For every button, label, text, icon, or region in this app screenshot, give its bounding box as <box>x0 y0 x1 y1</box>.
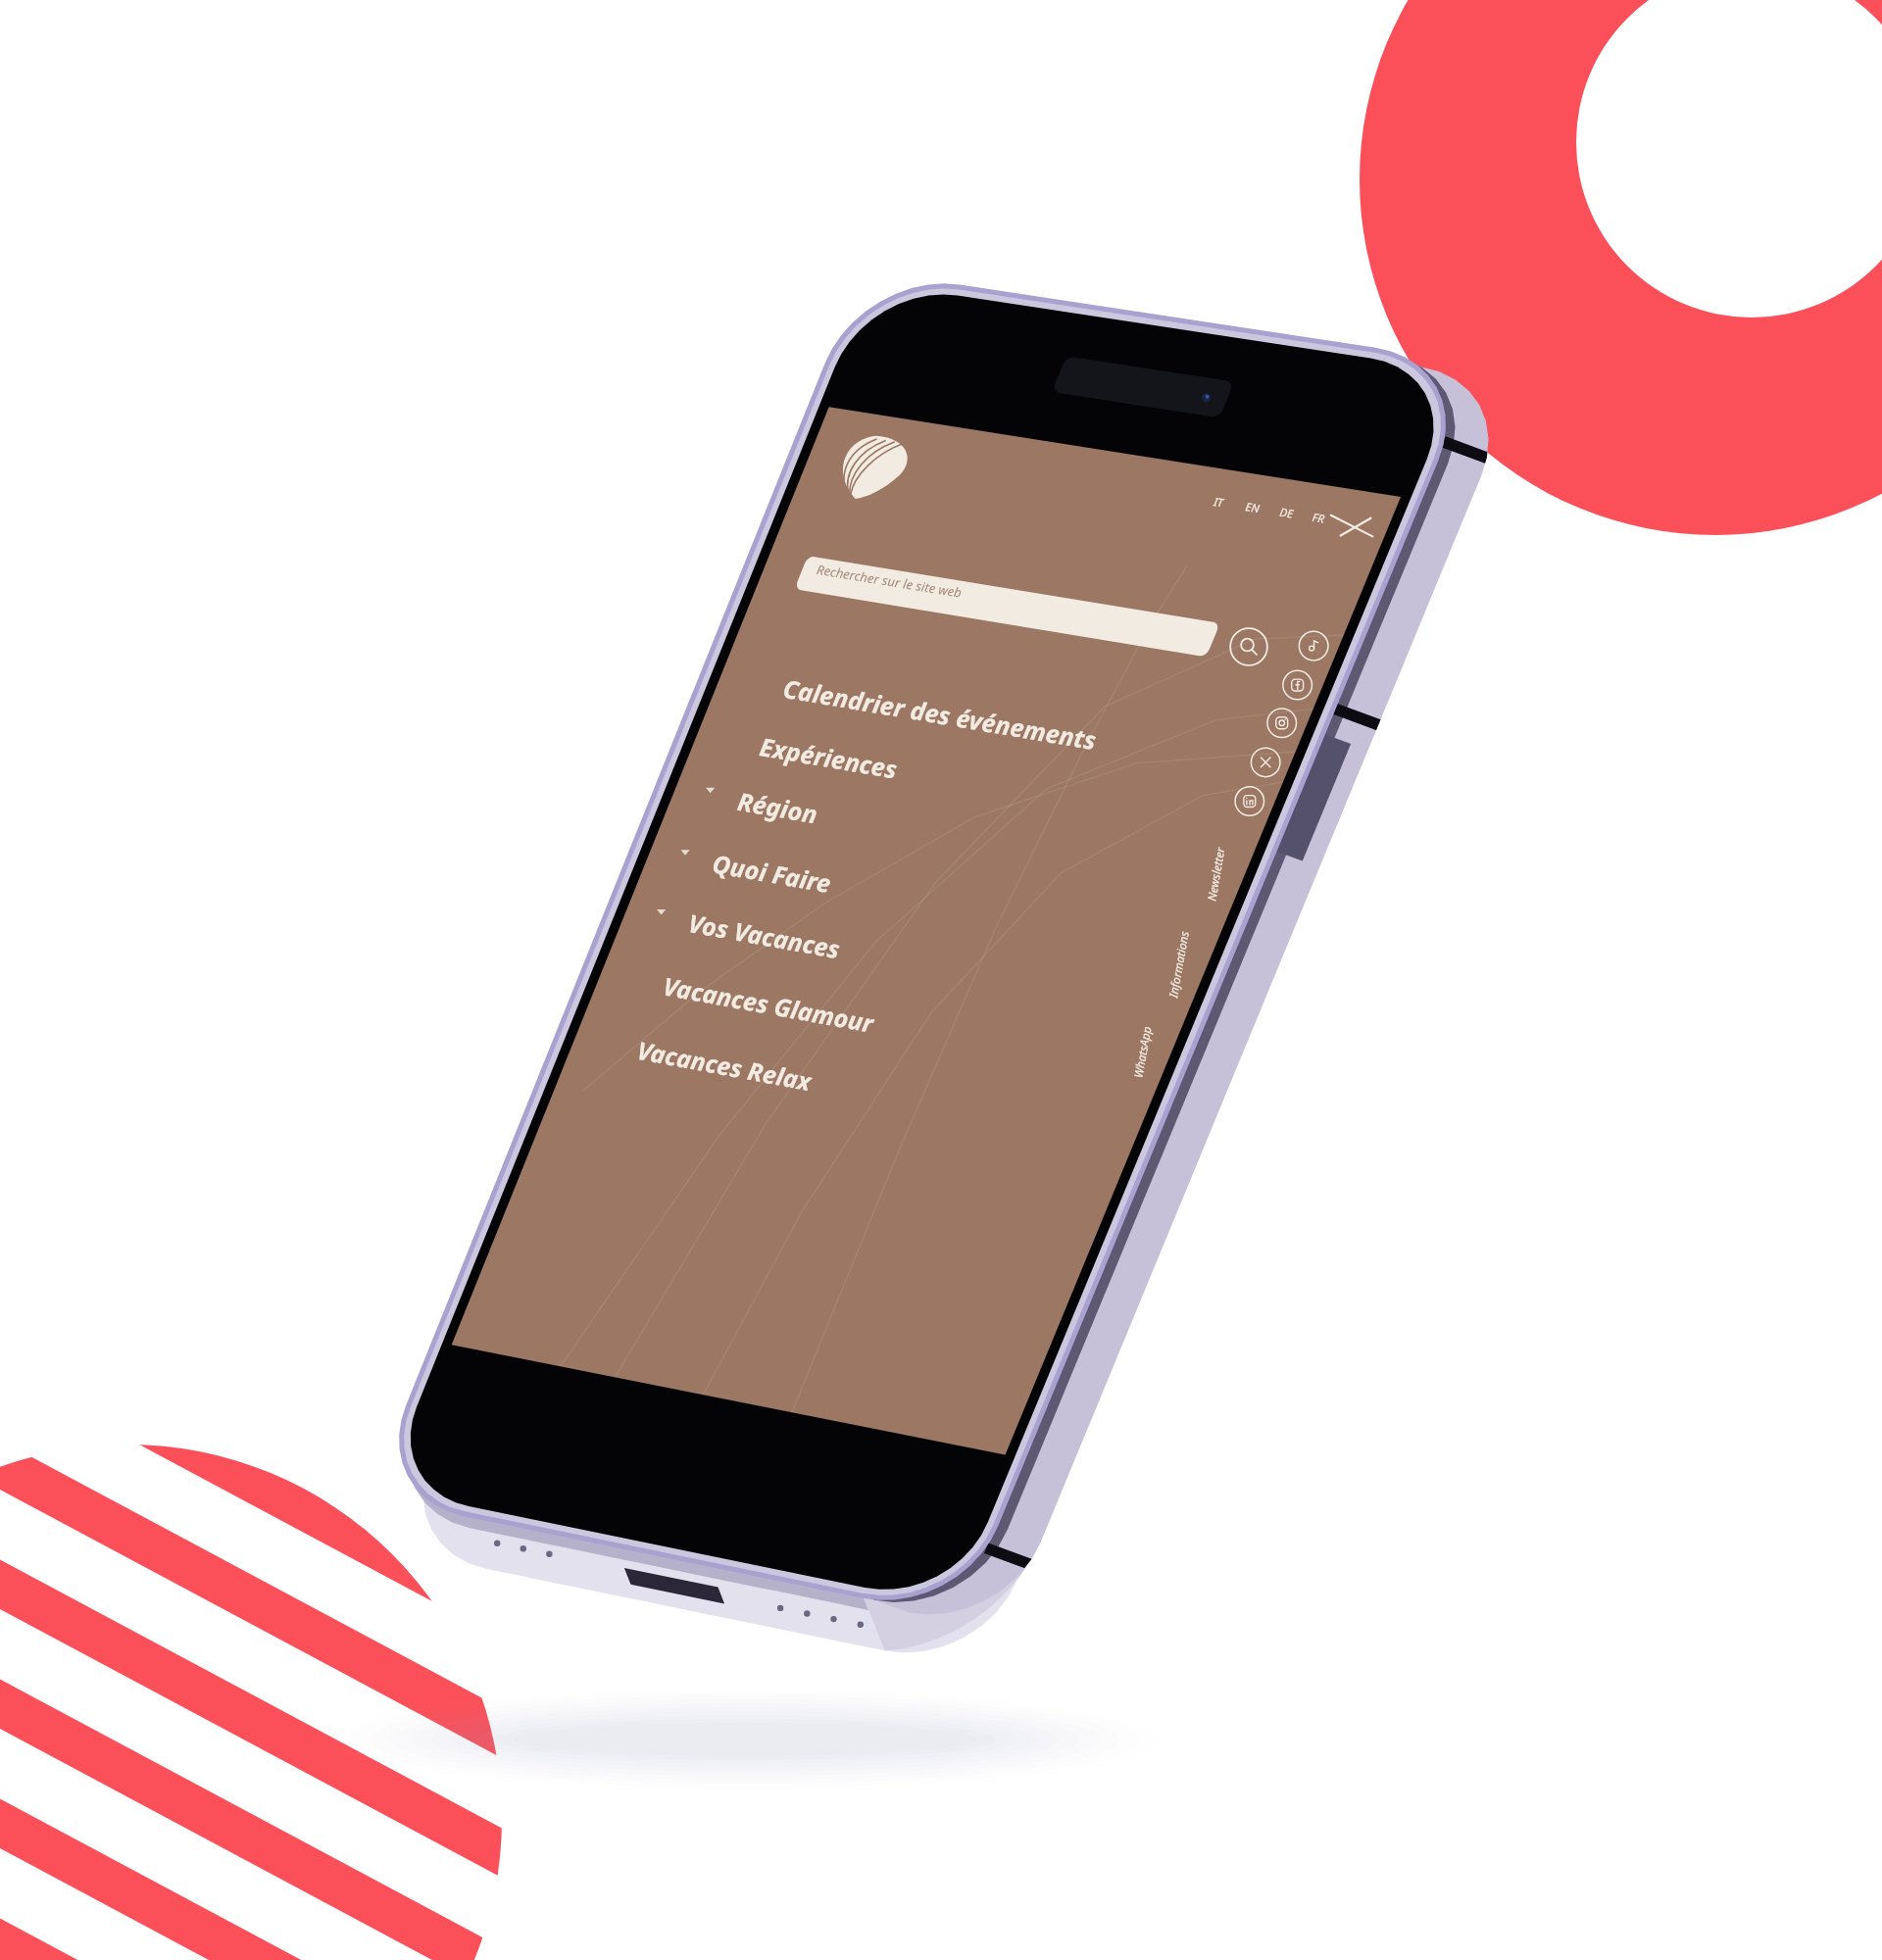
button[interactable]: Région <box>689 775 848 837</box>
button[interactable]: Deutsch <box>1263 497 1303 528</box>
button[interactable]: Vos Vacances <box>640 897 860 970</box>
button[interactable]: Vacances Glamour <box>651 966 896 1045</box>
button[interactable]: Français <box>1297 503 1335 534</box>
button[interactable]: TikTok <box>1289 620 1336 670</box>
button[interactable]: X <box>1241 737 1288 787</box>
button[interactable]: Search <box>1213 609 1283 685</box>
button[interactable]: Italiano <box>1198 487 1235 517</box>
button[interactable]: Calendrier des événements <box>770 668 1098 758</box>
button[interactable]: Close menu <box>1309 501 1389 548</box>
button[interactable]: Quoi Faire <box>664 838 856 906</box>
button[interactable]: Close menu <box>0 0 1882 1960</box>
button[interactable]: LinkedIn <box>1225 775 1272 825</box>
button[interactable]: Logo <box>817 427 925 509</box>
button[interactable]: WhatsApp <box>1113 1009 1171 1095</box>
button[interactable]: Vacances Relax <box>624 1031 841 1104</box>
button[interactable]: English <box>1229 492 1268 523</box>
button[interactable]: Newsletter <box>1185 828 1246 917</box>
button[interactable]: Instagram <box>1258 698 1305 748</box>
button[interactable]: Rechercher sur le site web <box>793 555 1219 657</box>
button[interactable]: Informations <box>1146 913 1211 1012</box>
button[interactable]: Facebook <box>1273 660 1320 710</box>
button[interactable]: Expériences <box>747 727 920 791</box>
